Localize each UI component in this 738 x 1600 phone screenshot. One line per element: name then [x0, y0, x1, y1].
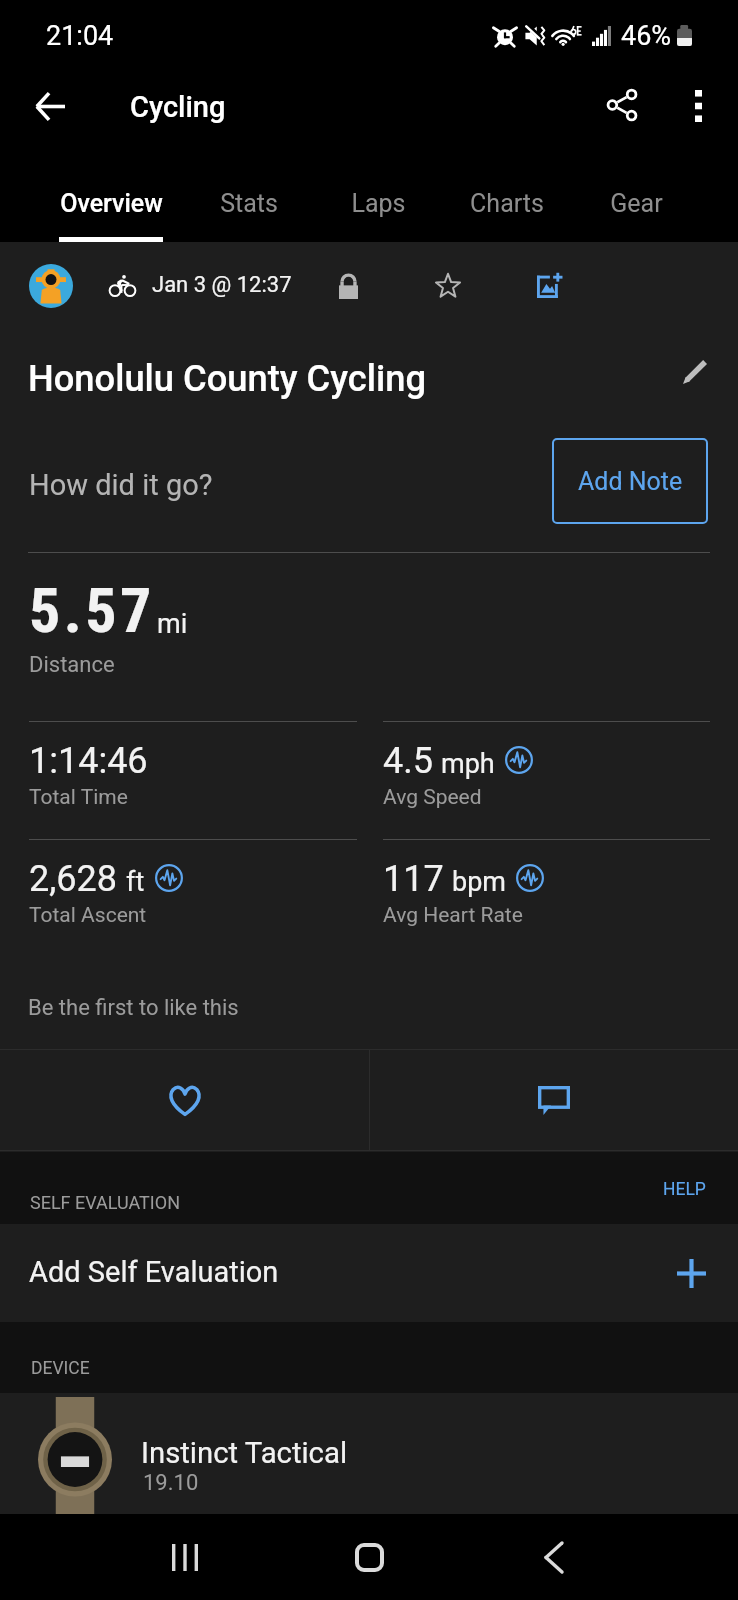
staticText: Charts	[470, 189, 544, 218]
staticText: bpm	[452, 866, 506, 898]
staticText: Instinct Tactical	[141, 1436, 348, 1470]
staticText: Gear	[610, 189, 663, 218]
button[interactable]: Charts	[445, 172, 569, 242]
staticText: Honolulu County Cycling	[28, 357, 427, 400]
staticText: Stats	[220, 189, 278, 218]
staticText: Be the first to like this	[28, 995, 239, 1021]
button[interactable]: More options	[666, 74, 730, 138]
button[interactable]: Back	[492, 1514, 615, 1600]
button[interactable]: Recent apps	[123, 1514, 246, 1600]
button[interactable]: 4.5	[383, 721, 710, 839]
button[interactable]	[0, 1224, 738, 1322]
staticText: 117	[383, 858, 444, 900]
staticText: Distance	[29, 652, 115, 678]
staticText: 21:04	[46, 20, 114, 52]
button[interactable]: Add photo	[527, 262, 573, 308]
staticText: 2,628	[29, 858, 118, 900]
button[interactable]: Add Note	[552, 438, 708, 524]
button[interactable]: Gear	[578, 172, 694, 242]
staticText: HELP	[663, 1179, 706, 1200]
button[interactable]: 1:14:46	[29, 721, 357, 839]
button[interactable]: 117	[383, 839, 710, 957]
button[interactable]: Navigate up	[18, 74, 82, 138]
staticText: Add Note	[578, 467, 683, 496]
button[interactable]: Home	[308, 1514, 431, 1600]
staticText: ft	[126, 866, 145, 898]
staticText: mph	[441, 748, 495, 780]
staticText: Laps	[351, 189, 406, 218]
staticText: 5.57	[29, 574, 155, 647]
staticText: Avg Heart Rate	[383, 903, 523, 928]
button[interactable]: Laps	[320, 172, 436, 242]
button[interactable]: Comment	[370, 1050, 738, 1150]
button[interactable]: Overview	[45, 172, 177, 242]
staticText: mi	[157, 608, 188, 640]
staticText: 19.10	[143, 1470, 199, 1496]
staticText: How did it go?	[29, 468, 213, 502]
staticText: Cycling	[130, 90, 226, 124]
button[interactable]: Edit activity name	[669, 346, 721, 398]
staticText: DEVICE	[31, 1358, 90, 1379]
button[interactable]: Favorite	[425, 262, 471, 308]
staticText: Total Time	[29, 785, 128, 810]
staticText: Total Ascent	[29, 903, 147, 928]
button[interactable]: Privacy setting	[325, 263, 371, 309]
staticText: Add Self Evaluation	[29, 1255, 279, 1289]
staticText: 1:14:46	[29, 740, 148, 782]
staticText: Jan 3 @ 12:37	[152, 272, 292, 298]
button[interactable]: HELP	[648, 1170, 720, 1208]
button[interactable]: Share	[590, 73, 654, 137]
staticText: SELF EVALUATION	[30, 1192, 180, 1213]
staticText: 46%	[621, 20, 672, 52]
button[interactable]	[0, 1393, 738, 1514]
staticText: Avg Speed	[383, 785, 482, 810]
button[interactable]: 2,628	[29, 839, 357, 957]
button[interactable]: Like	[0, 1050, 369, 1150]
staticText: 4.5	[383, 740, 433, 782]
button[interactable]: Stats	[191, 172, 307, 242]
staticText: Overview	[60, 189, 163, 218]
